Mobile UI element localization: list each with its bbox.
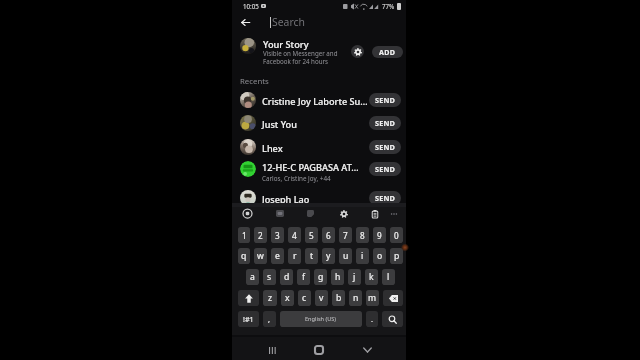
button[interactable]: Lhex	[232, 135, 406, 158]
staticText: SEND	[375, 95, 395, 105]
button[interactable]: 12-HE-C PAGBASA AT…	[232, 157, 406, 180]
button[interactable]: Search	[382, 311, 403, 327]
button[interactable]: g	[314, 269, 327, 285]
button[interactable]: English (US)	[280, 311, 362, 327]
staticText: w	[257, 250, 264, 262]
staticText: u	[343, 250, 349, 262]
button[interactable]: 9	[373, 227, 386, 243]
button[interactable]: 4	[288, 227, 301, 243]
staticText: Facebook for 24 hours	[263, 57, 328, 65]
button[interactable]: Cristine Joy Laborte Su…	[232, 88, 406, 111]
staticText: SEND	[375, 193, 395, 203]
button[interactable]: Just You	[232, 111, 406, 134]
button[interactable]: GIF	[273, 207, 286, 220]
button[interactable]: i	[356, 248, 369, 264]
button[interactable]: Recent apps	[264, 342, 280, 358]
staticText: 2	[258, 230, 263, 241]
button[interactable]: 2	[254, 227, 267, 243]
button[interactable]: 8	[356, 227, 369, 243]
button[interactable]: w	[254, 248, 267, 264]
staticText: f	[302, 271, 305, 283]
button[interactable]: .	[366, 311, 378, 327]
staticText: 8	[360, 230, 365, 241]
button[interactable]: Emoji	[241, 207, 254, 220]
button[interactable]: s	[263, 269, 276, 285]
staticText: p	[394, 250, 400, 262]
button[interactable]: o	[373, 248, 386, 264]
staticText: 5	[309, 230, 314, 241]
staticText: e	[275, 250, 280, 262]
staticText: l	[387, 271, 390, 283]
staticText: y	[326, 250, 331, 262]
button[interactable]: q	[238, 248, 250, 264]
button[interactable]: a	[246, 269, 259, 285]
button[interactable]: t	[305, 248, 318, 264]
button[interactable]: SEND	[369, 140, 401, 154]
staticText: 6	[326, 230, 331, 241]
button[interactable]: Shift	[238, 290, 259, 306]
button[interactable]: ADD	[372, 46, 403, 58]
button[interactable]: 0	[390, 227, 403, 243]
button[interactable]: SEND	[369, 116, 401, 130]
staticText: ,	[268, 314, 271, 324]
staticText: i	[361, 250, 364, 262]
button[interactable]: Back	[359, 342, 375, 358]
button[interactable]: b	[332, 290, 345, 306]
staticText: z	[268, 292, 273, 304]
button[interactable]: SEND	[369, 162, 401, 176]
button[interactable]: c	[298, 290, 311, 306]
button[interactable]: r	[288, 248, 301, 264]
button[interactable]: x	[281, 290, 294, 306]
button[interactable]: 6	[322, 227, 335, 243]
staticText: o	[377, 250, 383, 262]
button[interactable]: h	[331, 269, 344, 285]
button[interactable]: Your Story	[232, 30, 406, 62]
staticText: x	[285, 292, 290, 304]
button[interactable]: n	[349, 290, 362, 306]
button[interactable]: v	[315, 290, 328, 306]
button[interactable]: Clipboard	[368, 207, 381, 220]
staticText: Joseph Lao	[262, 193, 310, 205]
staticText: 77%	[382, 2, 395, 10]
button[interactable]: !#1	[238, 311, 259, 327]
button[interactable]: m	[366, 290, 379, 306]
staticText: c	[302, 292, 307, 304]
staticText: 1	[242, 230, 247, 241]
staticText: 0	[394, 230, 399, 241]
button[interactable]: 7	[339, 227, 352, 243]
button[interactable]: u	[339, 248, 352, 264]
button[interactable]: Backspace	[383, 290, 403, 306]
button[interactable]: Home	[311, 342, 327, 358]
button[interactable]: ,	[263, 311, 276, 327]
staticText: q	[241, 250, 247, 262]
button[interactable]: 3	[271, 227, 284, 243]
button[interactable]: SEND	[369, 93, 401, 107]
staticText: n	[353, 292, 359, 304]
staticText: Carlos, Cristine Joy, +44	[262, 174, 331, 183]
button[interactable]: 5	[305, 227, 318, 243]
button[interactable]: j	[348, 269, 361, 285]
button[interactable]: l	[382, 269, 395, 285]
staticText: a	[250, 271, 255, 283]
button[interactable]: Stickers	[304, 207, 317, 220]
button[interactable]: f	[297, 269, 310, 285]
button[interactable]: Story privacy settings	[351, 45, 364, 58]
staticText: ADD	[379, 47, 396, 57]
button[interactable]: Joseph Lao	[232, 186, 406, 209]
staticText: !#1	[243, 314, 254, 324]
button[interactable]: p	[390, 248, 403, 264]
staticText: m	[368, 292, 377, 304]
button[interactable]: k	[365, 269, 378, 285]
button[interactable]: z	[263, 290, 277, 306]
button[interactable]: y	[322, 248, 335, 264]
button[interactable]: SEND	[369, 191, 401, 205]
staticText: 12-HE-C PAGBASA AT…	[262, 161, 359, 173]
button[interactable]: 1	[238, 227, 250, 243]
button[interactable]: Keyboard settings	[337, 207, 350, 220]
staticText: b	[336, 292, 342, 304]
button[interactable]: More options	[387, 207, 400, 220]
staticText: 7	[343, 230, 348, 241]
button[interactable]: e	[271, 248, 284, 264]
button[interactable]: Back	[236, 13, 254, 31]
button[interactable]: d	[280, 269, 293, 285]
